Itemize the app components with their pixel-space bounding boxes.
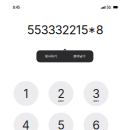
- staticText: 5: [57, 118, 64, 130]
- button[interactable]: 3: [83, 81, 108, 106]
- staticText: 5G: [106, 5, 110, 9]
- button[interactable]: 1: [13, 81, 38, 106]
- button[interactable]: 2: [48, 81, 73, 106]
- button[interactable]: 4: [13, 112, 38, 130]
- staticText: 복사하기: [45, 54, 57, 59]
- staticText: 6: [92, 118, 99, 130]
- staticText: 3: [92, 87, 99, 101]
- staticText: 8:45: [13, 5, 20, 9]
- staticText: 4: [22, 118, 30, 130]
- staticText: 2: [57, 87, 64, 101]
- button[interactable]: 5: [48, 112, 73, 130]
- staticText: DEF: [93, 100, 98, 103]
- staticText: 붙여넣기: [73, 54, 85, 59]
- staticText: 1: [23, 87, 28, 101]
- button[interactable]: 붙여넣기: [65, 50, 93, 62]
- staticText: ABC: [58, 100, 64, 103]
- button[interactable]: 복사하기: [36, 50, 65, 62]
- staticText: 553332215*8: [27, 23, 103, 37]
- button[interactable]: 6: [83, 112, 108, 130]
